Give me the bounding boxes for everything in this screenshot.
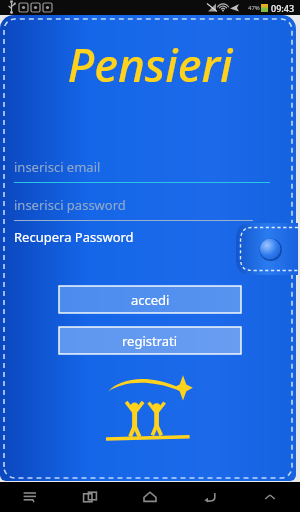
button[interactable]: Recupera Password — [14, 228, 134, 246]
staticText: inserisci email — [14, 158, 101, 176]
staticText: Recupera Password — [14, 228, 134, 246]
staticText: inserisci password — [14, 196, 126, 214]
button[interactable]: registrati — [59, 327, 241, 354]
staticText: 09:43 — [271, 2, 295, 14]
button[interactable]: Home — [120, 482, 180, 512]
staticText: 47% — [248, 4, 260, 12]
button[interactable]: Recents — [60, 482, 120, 512]
button[interactable]: Expand — [240, 482, 300, 512]
button[interactable]: inserisci email — [14, 158, 286, 183]
staticText: Pensieri — [67, 33, 233, 96]
button[interactable]: accedi — [59, 286, 241, 313]
staticText: accedi — [131, 291, 170, 309]
button[interactable]: Back — [180, 482, 240, 512]
button[interactable]: inserisci password — [14, 196, 286, 221]
staticText: registrati — [122, 332, 178, 350]
button[interactable]: Menu — [0, 482, 60, 512]
